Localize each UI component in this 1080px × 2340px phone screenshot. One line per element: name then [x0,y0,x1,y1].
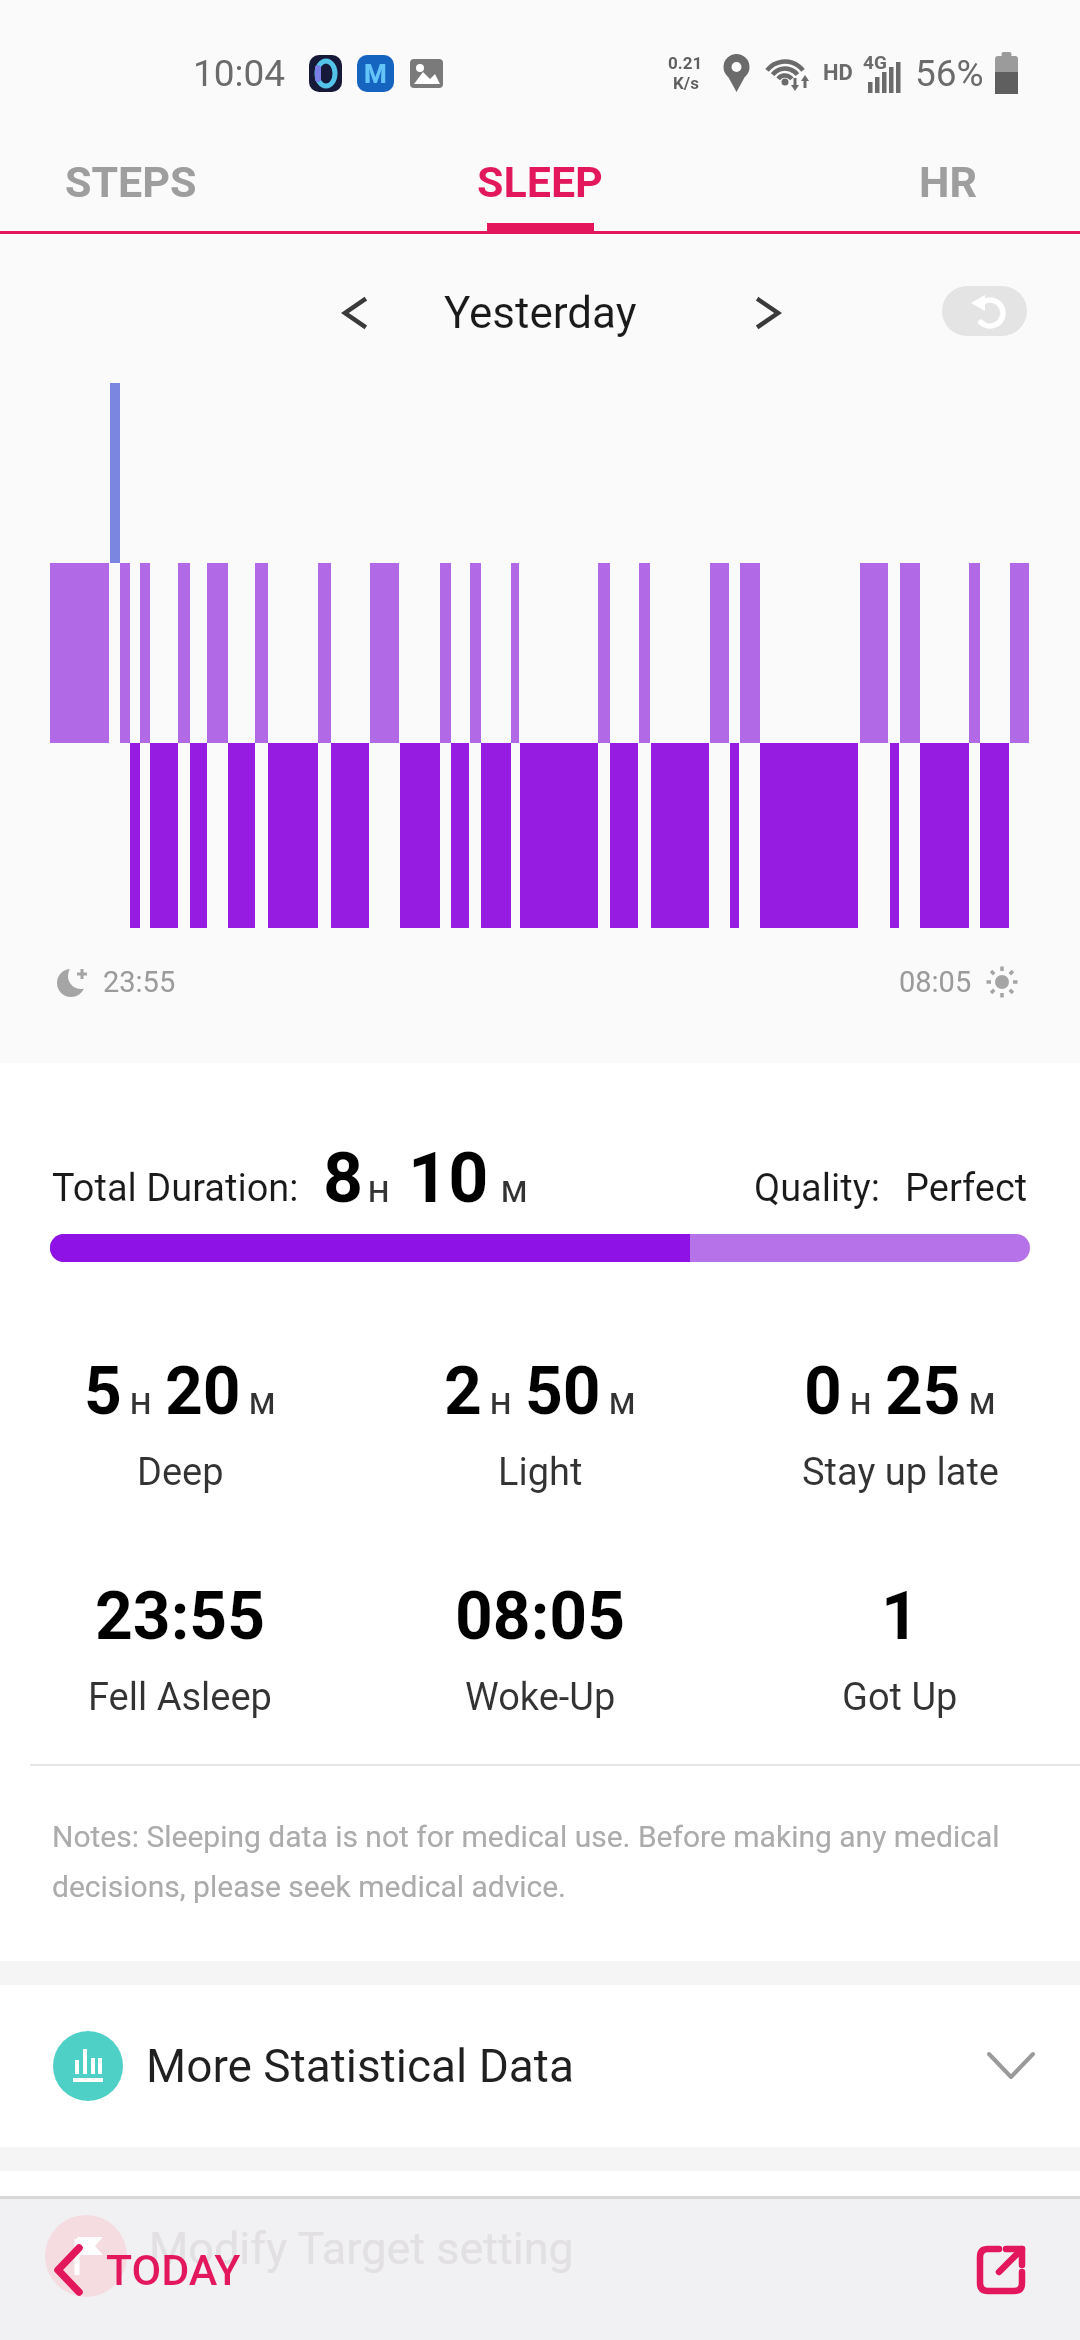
button[interactable]: HR [919,157,977,207]
staticText: Quality: [754,1166,880,1211]
staticText: Deep [137,1450,224,1495]
button[interactable] [754,298,785,328]
staticText: 5 [84,1353,122,1430]
staticText: Fell Asleep [88,1675,272,1720]
staticText: Woke-Up [465,1675,616,1720]
staticText: 10:04 [193,52,286,95]
staticText: H [130,1386,152,1421]
staticText: Modify Target setting [149,2222,574,2275]
staticText: 08:05 [899,965,972,999]
staticText: 2 [444,1353,482,1430]
staticText: SLEEP [477,157,603,207]
staticText: M [249,1386,276,1421]
staticText: H [368,1174,390,1209]
staticText: 25 [885,1353,961,1430]
staticText: Yesterday [444,287,637,339]
staticText: 8 [323,1137,364,1219]
button[interactable]: SLEEP [477,157,603,207]
staticText: HD [823,60,853,86]
staticText: TODAY [106,2245,241,2295]
staticText: 0.21 [668,53,703,73]
button[interactable] [338,298,369,328]
staticText: M [501,1174,528,1209]
staticText: 1 [881,1578,919,1655]
staticText: 08:05 [455,1578,626,1655]
staticText: 0 [804,1353,842,1430]
staticText: K/s [673,73,699,93]
staticText: Got Up [842,1675,958,1720]
staticText: Light [498,1450,583,1495]
staticText: M [364,59,387,89]
staticText: HR [919,157,977,207]
staticText: 10 [408,1137,489,1219]
button[interactable] [973,2242,1029,2298]
staticText: M [969,1386,996,1421]
staticText: Notes: Sleeping data is not for medical … [52,1819,1010,1904]
staticText: Stay up late [802,1450,999,1495]
button[interactable]: STEPS [65,157,197,207]
staticText: H [850,1386,872,1421]
button[interactable]: More Statistical Data [0,1985,1080,2147]
staticText: Perfect [905,1166,1028,1211]
staticText: 23:55 [103,965,176,999]
staticText: 23:55 [95,1578,266,1655]
staticText: M [609,1386,636,1421]
button[interactable] [942,286,1027,336]
staticText: 56% [915,52,984,95]
staticText: Total Duration: [52,1166,299,1211]
staticText: 20 [165,1353,241,1430]
staticText: 50 [525,1353,601,1430]
staticText: More Statistical Data [146,2039,574,2093]
staticText: STEPS [65,157,197,207]
staticText: H [490,1386,512,1421]
button[interactable]: TODAY [52,2244,241,2296]
staticText: 4G [863,51,887,73]
